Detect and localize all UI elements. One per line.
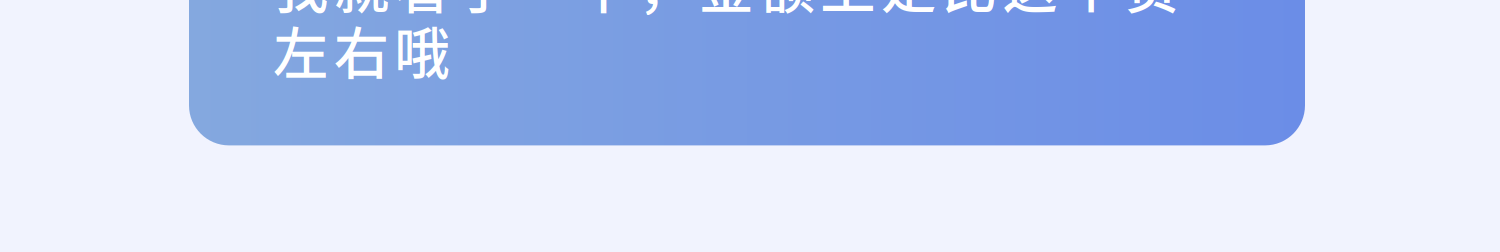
staticText: 我就看了一下，金额上是比这个贵 左右哦 (273, 0, 1179, 82)
button[interactable]: 我就看了一下，金额上是比这个贵 左右哦 (189, 0, 1305, 145)
